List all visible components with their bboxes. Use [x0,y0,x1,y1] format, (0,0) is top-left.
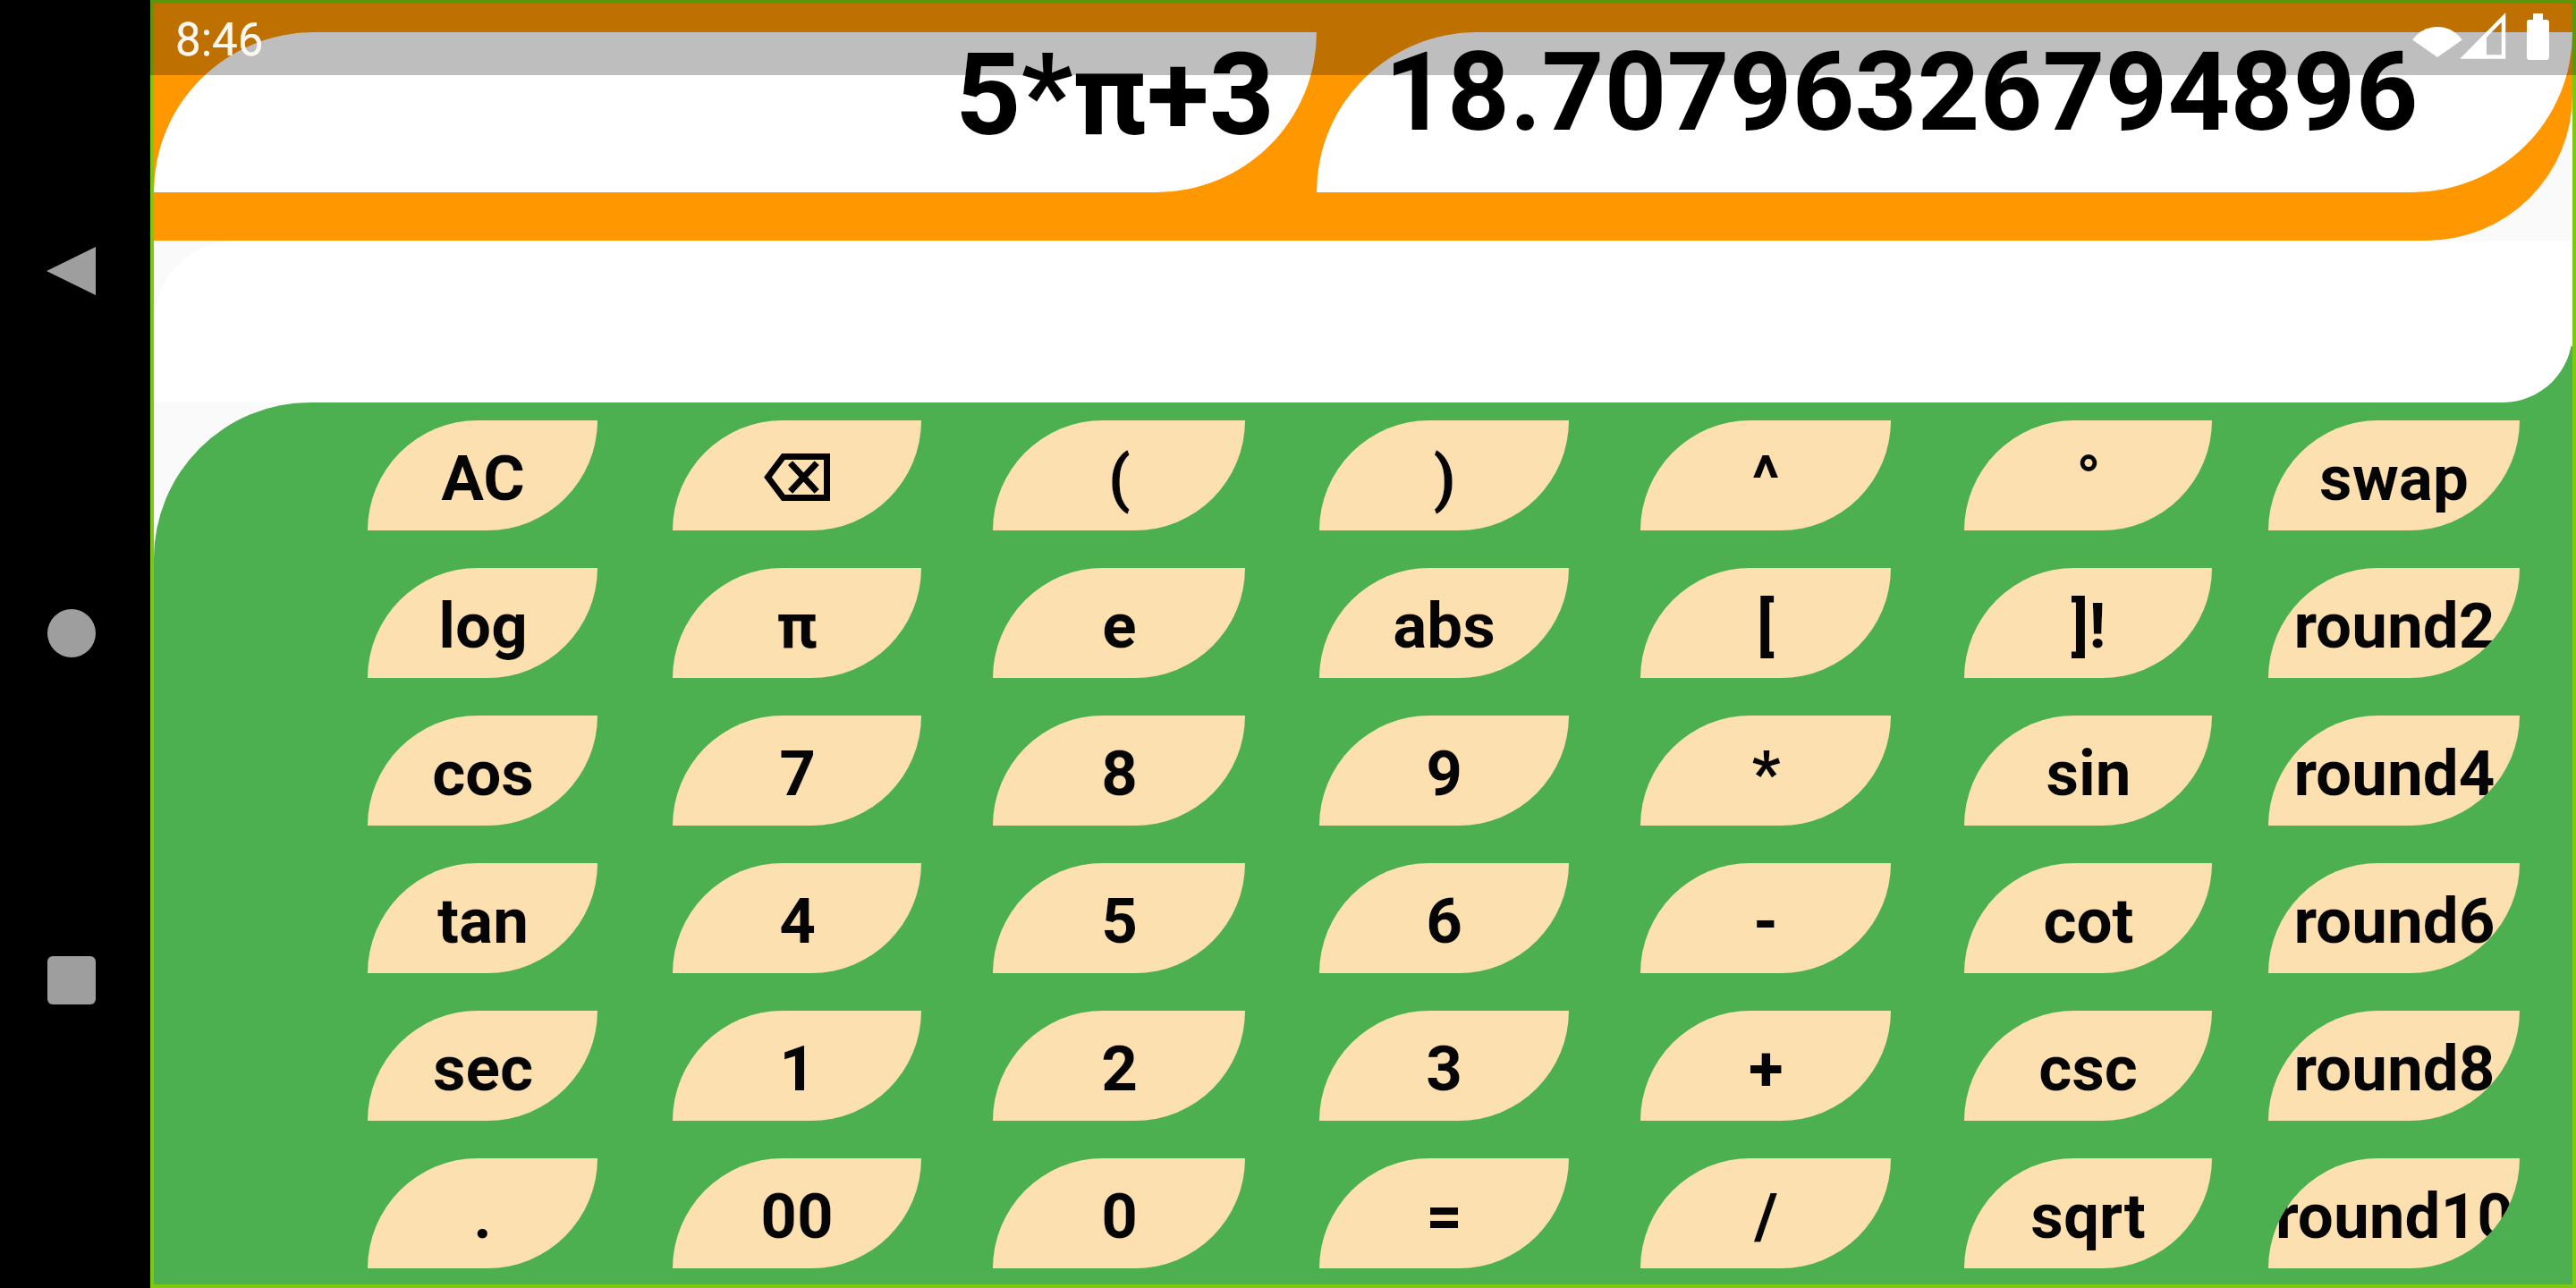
staticText: cos [432,736,534,810]
staticText: 3 [1426,1031,1462,1106]
staticText: = [1426,1179,1462,1253]
staticText: ]! [2071,589,2106,663]
button[interactable]: 6 [1319,863,1569,973]
button[interactable]: ]! [1964,568,2212,678]
staticText: log [438,589,528,663]
other: Status icons [2413,13,2549,61]
button[interactable]: round4 [2268,716,2520,826]
staticText: AC [441,441,525,515]
button[interactable]: = [1319,1158,1569,1268]
button[interactable]: / [1640,1158,1891,1268]
button[interactable]: cot [1964,863,2212,973]
button[interactable]: 5*π+3 [154,32,1317,192]
staticText: π [776,589,818,663]
button[interactable] [154,241,2572,402]
staticText: 8 [1101,736,1138,810]
staticText: 18.70796326794896 [1385,32,2419,157]
button[interactable]: Back [23,223,120,319]
staticText: round8 [2293,1031,2495,1106]
staticText: / [1754,1179,1778,1253]
staticText: round6 [2293,884,2495,958]
button[interactable]: cos [368,716,597,826]
staticText: 5 [1101,884,1138,958]
staticText: swap [2319,441,2469,515]
staticText: sec [433,1031,533,1106]
staticText: ( [1108,441,1131,515]
button[interactable]: abs [1319,568,1569,678]
staticText: 8:46 [175,13,264,67]
staticText: sqrt [2030,1179,2146,1253]
button[interactable]: 7 [673,716,921,826]
button[interactable]: e [993,568,1245,678]
button[interactable]: sin [1964,716,2212,826]
staticText: [ [1757,589,1775,663]
staticText: ^ [1751,441,1780,515]
button[interactable]: round10 [2268,1158,2520,1268]
staticText: round10 [2275,1179,2513,1253]
button[interactable]: * [1640,716,1891,826]
staticText: tan [437,884,529,958]
button[interactable]: sqrt [1964,1158,2212,1268]
button[interactable]: 0 [993,1158,1245,1268]
button[interactable]: 1 [673,1011,921,1121]
button[interactable]: Recent apps [23,932,120,1029]
button[interactable]: ° [1964,420,2212,530]
button[interactable]: 00 [673,1158,921,1268]
button[interactable]: 5 [993,863,1245,973]
staticText: 0 [1101,1179,1138,1253]
button[interactable]: 2 [993,1011,1245,1121]
staticText: 7 [779,736,816,810]
staticText: - [1753,884,1778,958]
button[interactable]: 8 [993,716,1245,826]
staticText: sin [2046,736,2131,810]
button[interactable]: log [368,568,597,678]
button[interactable]: AC [368,420,597,530]
staticText: abs [1393,589,1496,663]
staticText: 6 [1426,884,1462,958]
button[interactable]: Backspace [673,420,921,530]
button[interactable]: ) [1319,420,1569,530]
button[interactable]: ( [993,420,1245,530]
staticText: 5*π+3 [955,32,1275,162]
button[interactable]: π [673,568,921,678]
staticText: 2 [1101,1031,1138,1106]
staticText: ° [2076,441,2101,515]
button[interactable]: csc [1964,1011,2212,1121]
staticText: 9 [1426,736,1462,810]
staticText: 00 [760,1179,834,1253]
button[interactable]: + [1640,1011,1891,1121]
button[interactable]: 9 [1319,716,1569,826]
button[interactable]: - [1640,863,1891,973]
staticText: csc [2038,1031,2138,1106]
staticText: 4 [779,884,816,958]
button[interactable]: round8 [2268,1011,2520,1121]
button[interactable]: 4 [673,863,921,973]
staticText: ) [1433,441,1456,515]
button[interactable]: Home [23,585,120,682]
button[interactable]: tan [368,863,597,973]
button[interactable]: . [368,1158,597,1268]
button[interactable]: 3 [1319,1011,1569,1121]
button[interactable]: [ [1640,568,1891,678]
staticText: round4 [2293,736,2495,810]
staticText: cot [2043,884,2134,958]
staticText: * [1751,736,1781,810]
staticText: . [473,1179,492,1253]
button[interactable]: ^ [1640,420,1891,530]
button[interactable]: sec [368,1011,597,1121]
staticText: round2 [2293,589,2495,663]
button[interactable]: round2 [2268,568,2520,678]
button[interactable]: 18.70796326794896 [1317,32,2572,192]
staticText: 1 [779,1031,816,1106]
button[interactable]: round6 [2268,863,2520,973]
staticText: e [1102,589,1137,663]
button[interactable]: swap [2268,420,2520,530]
staticText: + [1749,1031,1784,1106]
